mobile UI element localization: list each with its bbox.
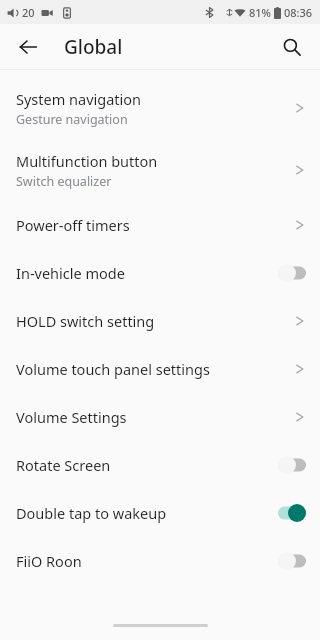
button[interactable]: Search (272, 27, 312, 67)
button[interactable]: Power-off timers (0, 201, 320, 249)
button[interactable]: In-vehicle mode (0, 249, 320, 297)
staticText: Switch equalizer (16, 173, 112, 190)
button[interactable]: FiiO Roon (0, 537, 320, 585)
staticText: 81% (249, 5, 271, 20)
staticText: Volume touch panel settings (16, 359, 295, 379)
staticText: FiiO Roon (16, 551, 270, 571)
button[interactable]: HOLD switch setting (0, 297, 320, 345)
staticText: Rotate Screen (16, 455, 270, 475)
staticText: 08:36 (284, 5, 313, 20)
button[interactable]: Multifunction button (0, 139, 320, 201)
button[interactable]: Volume Settings (0, 393, 320, 441)
staticText: HOLD switch setting (16, 311, 295, 331)
button[interactable]: Volume touch panel settings (0, 345, 320, 393)
staticText: Power-off timers (16, 215, 295, 235)
button[interactable]: Back (8, 27, 48, 67)
staticText: Global (64, 34, 123, 60)
staticText: Volume Settings (16, 407, 295, 427)
button[interactable]: Rotate Screen (0, 441, 320, 489)
staticText: Multifunction button (16, 151, 158, 171)
staticText: In-vehicle mode (16, 263, 270, 283)
button[interactable]: System navigation (0, 77, 320, 139)
button[interactable]: Double tap to wakeup (0, 489, 320, 537)
staticText: System navigation (16, 89, 142, 109)
staticText: Double tap to wakeup (16, 503, 270, 523)
staticText: Gesture navigation (16, 111, 128, 128)
staticText: 20 (22, 5, 35, 20)
